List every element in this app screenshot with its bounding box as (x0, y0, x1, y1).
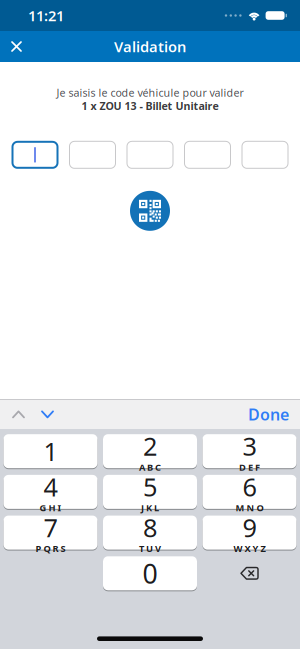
button[interactable]: 3 (202, 434, 296, 468)
button[interactable]: 2 (103, 434, 197, 468)
staticText: 1 x ZOU 13 - Billet Unitaire (81, 99, 218, 113)
staticText: 0 (142, 556, 157, 591)
staticText: 9 (242, 511, 256, 544)
button[interactable]: 0 (103, 556, 197, 590)
staticText: T U V (139, 542, 161, 555)
button[interactable]: Previous field (0, 403, 24, 425)
staticText: Je saisis le code véhicule pour valider (56, 85, 243, 100)
staticText: 5 (143, 470, 157, 503)
staticText: J K L (141, 501, 159, 514)
staticText: M N O (235, 501, 263, 514)
button[interactable]: 4 (3, 475, 97, 509)
button[interactable]: Next field (24, 403, 53, 425)
button[interactable]: Scan QR code (130, 191, 170, 231)
staticText: W X Y Z (233, 542, 265, 555)
staticText: Validation (114, 37, 186, 56)
staticText: 4 (43, 470, 57, 503)
button[interactable]: Done (248, 398, 300, 431)
staticText: 8 (143, 511, 157, 544)
staticText: A B C (139, 461, 161, 473)
staticText: 1 (43, 434, 57, 468)
staticText: D E F (239, 461, 260, 473)
staticText: 3 (242, 429, 256, 463)
button[interactable]: Close (0, 32, 21, 61)
staticText: 2 (143, 429, 157, 463)
staticText: G H I (39, 501, 61, 514)
staticText: 7 (43, 511, 57, 544)
button[interactable]: 7 (3, 516, 97, 550)
button[interactable]: 1 (3, 434, 97, 468)
button[interactable]: 6 (202, 475, 296, 509)
staticText: 11:21 (28, 6, 64, 25)
button[interactable]: Delete (202, 556, 296, 590)
button[interactable]: 5 (103, 475, 197, 509)
staticText: P Q R S (35, 542, 65, 555)
button[interactable]: 9 (202, 516, 296, 550)
button[interactable]: 8 (103, 516, 197, 550)
staticText: 6 (242, 470, 256, 503)
staticText: Done (248, 404, 289, 425)
